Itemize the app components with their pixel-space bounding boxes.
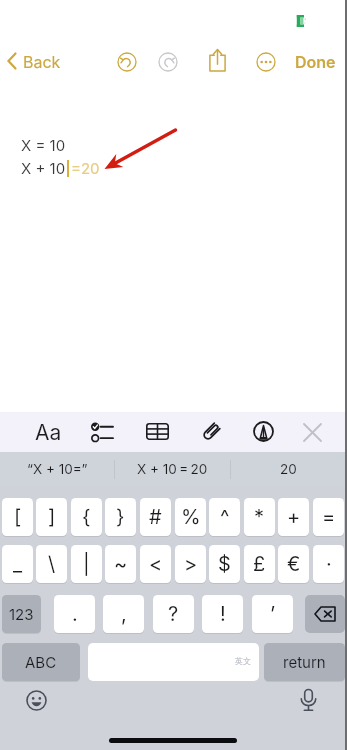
staticText: ~ bbox=[114, 552, 128, 576]
button[interactable]: Backspace bbox=[305, 595, 345, 633]
button[interactable]: Markup bbox=[253, 421, 274, 442]
staticText: = bbox=[322, 505, 336, 529]
staticText: =20 bbox=[71, 159, 100, 177]
staticText: ABC bbox=[25, 653, 57, 671]
button[interactable]: [ bbox=[2, 498, 33, 536]
staticText: * bbox=[254, 505, 265, 529]
staticText: ? bbox=[168, 602, 179, 626]
button[interactable]: ABC bbox=[2, 643, 80, 681]
button[interactable]: } bbox=[105, 498, 136, 536]
button[interactable]: ? bbox=[153, 595, 194, 633]
button[interactable]: . bbox=[54, 595, 95, 633]
staticText: 123 bbox=[9, 605, 34, 623]
staticText: X + 10 bbox=[21, 159, 66, 177]
staticText: · bbox=[326, 552, 332, 576]
staticText: < bbox=[149, 552, 163, 576]
staticText: > bbox=[184, 552, 198, 576]
staticText: _ bbox=[13, 552, 23, 576]
staticText: ! bbox=[220, 602, 226, 626]
button[interactable]: ’ bbox=[252, 595, 293, 633]
button[interactable]: , bbox=[103, 595, 144, 633]
staticText: return bbox=[283, 653, 326, 671]
button[interactable]: £ bbox=[244, 545, 275, 583]
button[interactable]: More bbox=[256, 52, 276, 72]
button[interactable]: “X + 10=” bbox=[0, 452, 114, 486]
staticText: # bbox=[149, 505, 162, 529]
staticText: X = 10 bbox=[21, 136, 66, 154]
button[interactable]: Attach bbox=[202, 421, 222, 441]
staticText: 英文 bbox=[235, 656, 251, 666]
button[interactable]: _ bbox=[2, 545, 33, 583]
button[interactable]: X + 10 = 20 bbox=[114, 452, 230, 486]
button[interactable]: + bbox=[278, 498, 309, 536]
button[interactable]: ] bbox=[36, 498, 67, 536]
button[interactable]: Close bbox=[303, 423, 322, 442]
staticText: Done bbox=[295, 52, 336, 71]
button[interactable]: Back bbox=[3, 46, 65, 76]
staticText: ^ bbox=[220, 505, 230, 529]
button[interactable]: ! bbox=[202, 595, 243, 633]
staticText: Aa bbox=[35, 420, 62, 444]
staticText: $ bbox=[218, 552, 231, 576]
button[interactable]: ~ bbox=[105, 545, 136, 583]
staticText: % bbox=[181, 505, 201, 529]
button[interactable]: Redo bbox=[158, 52, 178, 72]
staticText: ’ bbox=[270, 602, 276, 626]
staticText: , bbox=[121, 602, 127, 626]
staticText: X + 10 = 20 bbox=[137, 461, 208, 477]
button[interactable]: = bbox=[313, 498, 344, 536]
button[interactable]: 20 bbox=[230, 452, 347, 486]
staticText: “X + 10=” bbox=[27, 461, 88, 477]
button[interactable]: * bbox=[244, 498, 275, 536]
button[interactable]: Dictation bbox=[299, 688, 318, 712]
button[interactable]: $ bbox=[209, 545, 240, 583]
button[interactable]: Share bbox=[208, 48, 227, 72]
staticText: | bbox=[83, 552, 90, 576]
staticText: \ bbox=[48, 552, 56, 576]
staticText: . bbox=[72, 602, 78, 626]
button[interactable]: \ bbox=[36, 545, 67, 583]
button[interactable]: Undo bbox=[117, 52, 137, 72]
staticText: Back bbox=[23, 52, 61, 71]
button[interactable]: return bbox=[264, 643, 345, 681]
button[interactable]: Format bbox=[34, 420, 62, 444]
staticText: € bbox=[287, 552, 301, 576]
button[interactable]: | bbox=[71, 545, 102, 583]
staticText: £ bbox=[253, 552, 266, 576]
button[interactable]: · bbox=[313, 545, 344, 583]
button[interactable]: ^ bbox=[209, 498, 240, 536]
staticText: ] bbox=[48, 505, 56, 529]
staticText: + bbox=[287, 505, 301, 529]
button[interactable]: { bbox=[71, 498, 102, 536]
button[interactable]: < bbox=[140, 545, 171, 583]
staticText: } bbox=[116, 505, 125, 529]
staticText: 20 bbox=[280, 461, 297, 477]
button[interactable]: % bbox=[175, 498, 206, 536]
button[interactable]: > bbox=[175, 545, 206, 583]
staticText: { bbox=[82, 505, 91, 529]
button[interactable]: Table bbox=[146, 422, 169, 441]
button[interactable]: Space bbox=[88, 643, 259, 681]
button[interactable]: Emoji bbox=[26, 690, 47, 711]
staticText: [ bbox=[14, 505, 22, 529]
button[interactable]: Done bbox=[291, 46, 340, 76]
button[interactable]: € bbox=[278, 545, 309, 583]
button[interactable]: # bbox=[140, 498, 171, 536]
button[interactable]: Checklist bbox=[91, 421, 113, 443]
button[interactable]: 123 bbox=[2, 595, 41, 633]
